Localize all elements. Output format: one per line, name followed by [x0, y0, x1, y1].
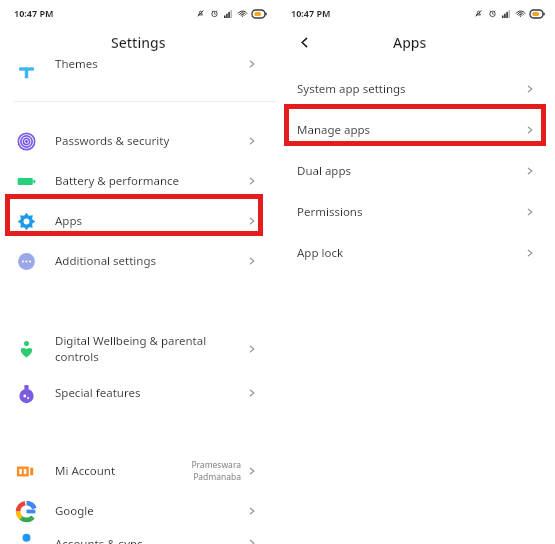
- staticText: 10:47 PM: [14, 7, 54, 19]
- button[interactable]: App lock: [277, 232, 555, 273]
- button[interactable]: Themes: [0, 58, 277, 84]
- staticText: Apps: [55, 213, 247, 229]
- staticText: Dual apps: [297, 163, 525, 179]
- button[interactable]: System app settings: [277, 68, 555, 109]
- staticText: Permissions: [297, 204, 525, 220]
- staticText: Google: [55, 503, 247, 519]
- staticText: System app settings: [297, 81, 525, 97]
- staticText: Additional settings: [55, 253, 247, 269]
- staticText: Themes: [55, 56, 247, 72]
- button[interactable]: Battery & performance: [0, 161, 277, 201]
- staticText: Battery & performance: [55, 173, 247, 189]
- staticText: Accounts & sync: [55, 536, 247, 544]
- staticText: Digital Wellbeing & parental controls: [55, 333, 247, 365]
- button[interactable]: Special features: [0, 373, 277, 413]
- staticText: Mi Account: [55, 463, 191, 479]
- staticText: Passwords & security: [55, 133, 247, 149]
- staticText: Prameswara Padmanaba: [191, 459, 241, 483]
- button[interactable]: Permissions: [277, 191, 555, 232]
- button[interactable]: Additional settings: [0, 241, 277, 281]
- button[interactable]: Back: [293, 31, 315, 53]
- staticText: Apps: [393, 33, 427, 52]
- staticText: Special features: [55, 385, 247, 401]
- staticText: Settings: [111, 33, 166, 52]
- button[interactable]: Digital Wellbeing & parental controls: [0, 325, 277, 373]
- button[interactable]: Accounts & sync: [0, 531, 277, 544]
- button[interactable]: Mi Account: [0, 451, 277, 491]
- button[interactable]: Manage apps: [277, 109, 555, 150]
- button[interactable]: Passwords & security: [0, 121, 277, 161]
- staticText: Manage apps: [297, 122, 525, 138]
- staticText: App lock: [297, 245, 525, 261]
- button[interactable]: Dual apps: [277, 150, 555, 191]
- staticText: 10:47 PM: [291, 7, 331, 19]
- button[interactable]: Apps: [0, 201, 277, 241]
- button[interactable]: Google: [0, 491, 277, 531]
